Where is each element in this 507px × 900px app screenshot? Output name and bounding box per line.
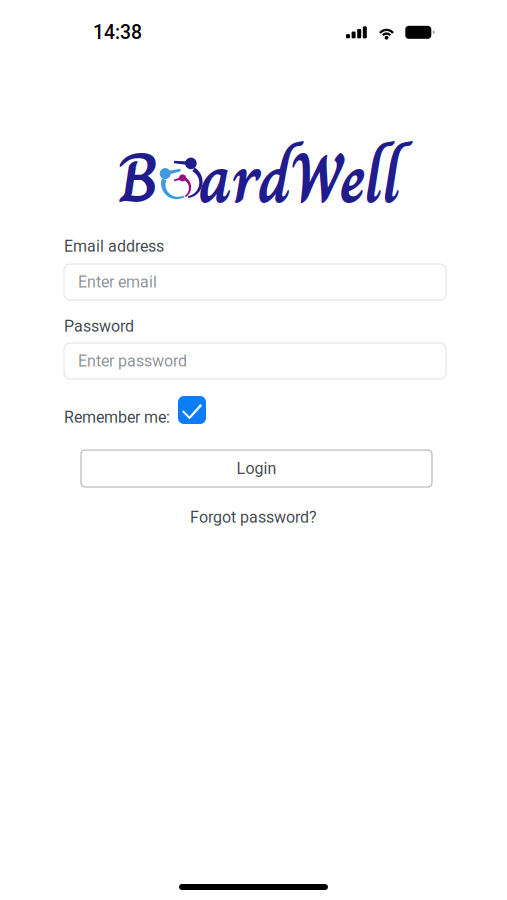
button[interactable]: Forgot password? — [0, 508, 507, 527]
staticText: Remember me: — [64, 408, 170, 427]
staticText: 14:38 — [93, 21, 142, 44]
staticText: Login — [236, 459, 276, 478]
staticText: Enter email — [78, 273, 157, 291]
staticText: Forgot password? — [190, 508, 317, 527]
button[interactable]: Login — [81, 450, 432, 487]
button[interactable]: Remember me — [178, 396, 206, 424]
staticText: B — [117, 124, 157, 232]
staticText: Password — [64, 317, 134, 336]
staticText: ardWell — [199, 124, 401, 232]
staticText: Email address — [64, 237, 164, 256]
staticText: Enter password — [78, 352, 187, 370]
